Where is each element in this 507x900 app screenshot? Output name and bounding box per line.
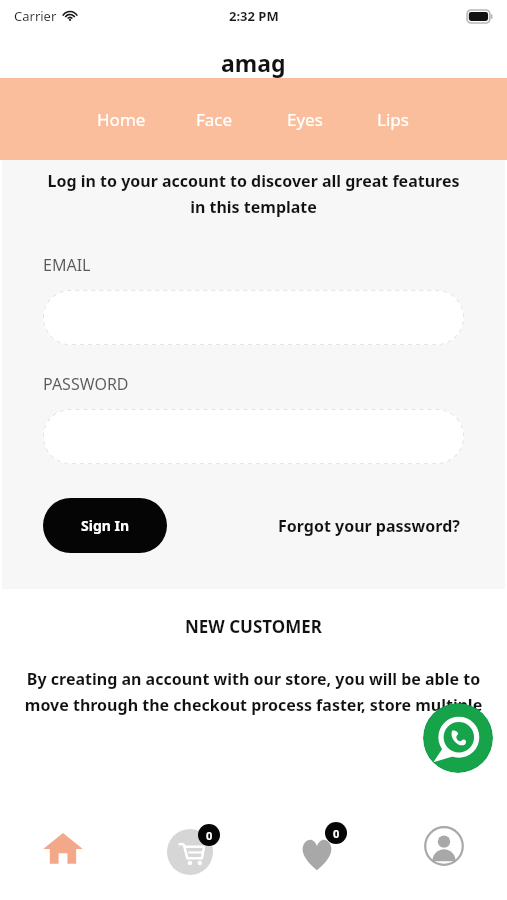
button[interactable]	[43, 409, 464, 464]
button[interactable]: Face	[169, 78, 259, 160]
staticText: Carrier	[14, 7, 57, 25]
button[interactable]: Sign In	[43, 498, 167, 553]
staticText: 2:32 PM	[229, 7, 279, 25]
staticText: Face	[196, 108, 233, 131]
staticText: PASSWORD	[43, 373, 129, 395]
button[interactable]: Chat on WhatsApp	[423, 703, 493, 773]
staticText: By creating an account with our store, y…	[10, 668, 497, 716]
staticText: Log in to your account to discover all g…	[43, 170, 464, 218]
staticText: Forgot your password?	[278, 515, 460, 537]
staticText: amag	[221, 47, 286, 78]
button[interactable]: Lips	[351, 78, 435, 160]
button[interactable]	[43, 290, 464, 345]
staticText: SIGN IN	[220, 112, 287, 135]
staticText: NEW CUSTOMER	[185, 615, 322, 638]
staticText: 0	[206, 828, 213, 843]
button[interactable]: Eyes	[259, 78, 351, 160]
staticText: Eyes	[287, 108, 323, 131]
staticText: Lips	[377, 108, 409, 131]
button[interactable]: Wishlist, 0 items	[253, 812, 380, 900]
staticText: 0	[333, 826, 340, 841]
button[interactable]: Home	[0, 812, 126, 900]
button[interactable]: Home	[73, 78, 169, 160]
button[interactable]: Account	[380, 812, 507, 900]
staticText: Sign In	[81, 516, 130, 535]
staticText: Home	[97, 108, 146, 131]
button[interactable]: Cart, 0 items	[126, 812, 253, 900]
staticText: EMAIL	[43, 254, 91, 276]
button[interactable]: Forgot your password?	[274, 511, 464, 541]
